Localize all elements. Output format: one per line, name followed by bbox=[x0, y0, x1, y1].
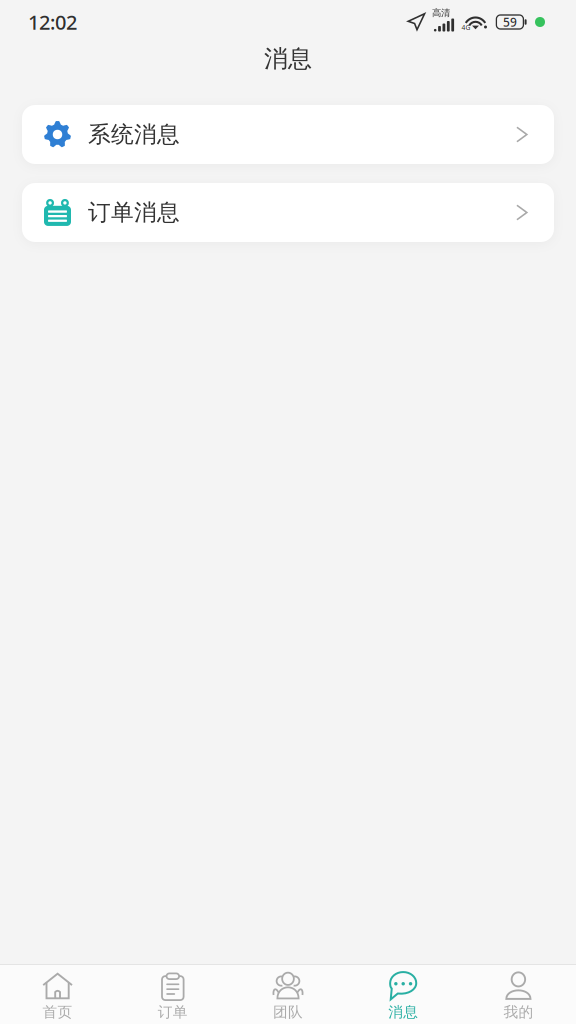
button[interactable]: 系统消息 bbox=[22, 105, 554, 164]
button[interactable]: 消息 bbox=[346, 964, 461, 1024]
staticText: 4G bbox=[461, 23, 470, 32]
staticText: 团队 bbox=[273, 1003, 303, 1021]
button[interactable]: 订单 bbox=[115, 964, 230, 1024]
staticText: 消息 bbox=[264, 44, 312, 73]
button[interactable]: 订单消息 bbox=[22, 183, 554, 242]
button[interactable]: 我的 bbox=[461, 964, 576, 1024]
staticText: 订单 bbox=[158, 1003, 188, 1021]
staticText: 59 bbox=[503, 14, 517, 30]
staticText: 消息 bbox=[388, 1003, 418, 1021]
button[interactable]: 团队 bbox=[230, 964, 346, 1024]
staticText: 高清 bbox=[432, 7, 450, 18]
staticText: 12:02 bbox=[28, 9, 77, 35]
button[interactable]: 首页 bbox=[0, 964, 115, 1024]
staticText: 我的 bbox=[503, 1003, 533, 1021]
staticText: 首页 bbox=[43, 1003, 73, 1021]
staticText: 订单消息 bbox=[88, 199, 180, 226]
staticText: 系统消息 bbox=[88, 121, 180, 148]
